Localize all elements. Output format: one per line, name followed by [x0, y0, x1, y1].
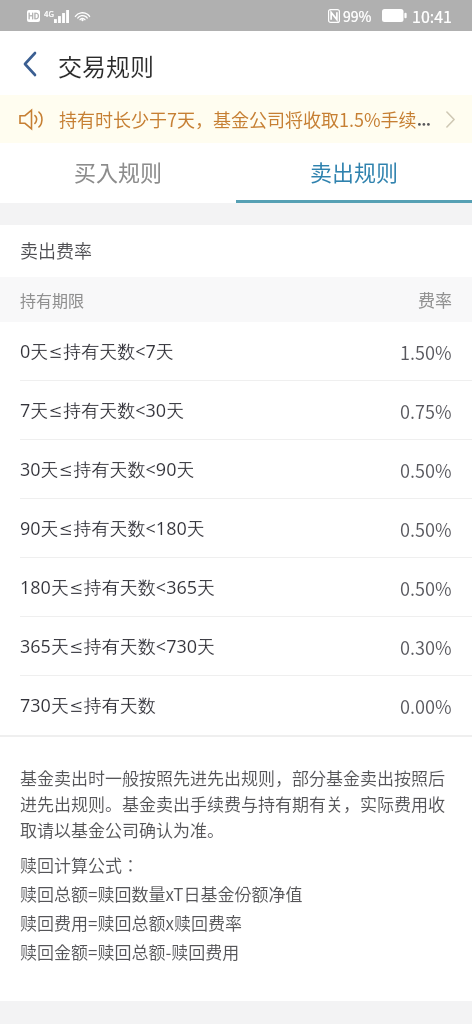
staticText: 持有时长少于7天，基金公司将收取1.5%手续: [59, 106, 417, 132]
staticText: 赎回计算公式：: [20, 852, 139, 877]
staticText: 99%: [343, 6, 372, 26]
button[interactable]: 卖出规则: [236, 143, 472, 200]
staticText: 费率: [418, 287, 452, 312]
staticText: 基金卖出时一般按照先进先出规则，部分基金卖出按照后进先出规则。基金卖出手续费与持…: [20, 765, 448, 841]
staticText: 10:41: [412, 4, 452, 27]
staticText: 7天≤持有天数<30天: [20, 398, 185, 423]
staticText: HD: [28, 10, 40, 22]
staticText: 卖出费率: [20, 237, 92, 263]
staticText: 0.50%: [400, 516, 452, 542]
staticText: 持有期限: [20, 288, 85, 311]
staticText: 0.00%: [400, 693, 452, 719]
staticText: 0.50%: [400, 575, 452, 601]
staticText: 365天≤持有天数<730天: [20, 634, 216, 659]
staticText: 0.30%: [400, 634, 452, 660]
staticText: 0天≤持有天数<7天: [20, 339, 174, 364]
staticText: 30天≤持有天数<90天: [20, 457, 195, 482]
staticText: 90天≤持有天数<180天: [20, 516, 205, 541]
staticText: 1.50%: [400, 339, 452, 365]
staticText: 4G: [44, 8, 54, 20]
staticText: 交易规则: [58, 48, 154, 83]
staticText: 0.50%: [400, 457, 452, 483]
staticText: 0.75%: [400, 398, 452, 424]
staticText: 买入规则: [74, 155, 163, 187]
staticText: 730天≤持有天数: [20, 693, 156, 718]
staticText: 赎回总额=赎回数量xT日基金份额净值: [20, 881, 303, 906]
button[interactable]: Back: [0, 31, 58, 95]
staticText: 赎回费用=赎回总额x赎回费率: [20, 910, 242, 935]
button[interactable]: 买入规则: [0, 143, 236, 200]
staticText: 卖出规则: [310, 155, 399, 187]
staticText: 赎回金额=赎回总额-赎回费用: [20, 939, 240, 964]
staticText: 180天≤持有天数<365天: [20, 575, 216, 600]
button[interactable]: 持有时长少于7天，基金公司将收取1.5%手续: [0, 95, 472, 143]
